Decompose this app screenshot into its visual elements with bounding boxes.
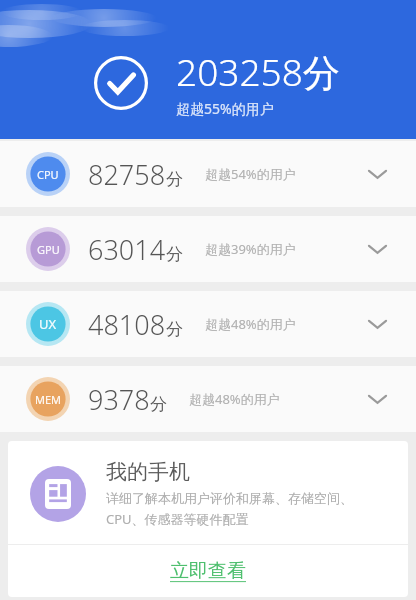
staticText: 超越39%的用户 [205, 240, 296, 258]
staticText: 超越48%的用户 [189, 390, 280, 408]
staticText: 立即查看 [170, 559, 246, 583]
button[interactable]: UX [0, 291, 416, 357]
other: Expand CPU [362, 159, 392, 189]
other: Expand MEM [362, 384, 392, 414]
staticText: MEM [35, 392, 62, 407]
staticText: 9378 [88, 381, 150, 418]
staticText: 分 [166, 319, 183, 340]
staticText: GPU [37, 242, 60, 257]
staticText: 203258分 [176, 46, 340, 97]
button[interactable]: MEM [0, 366, 416, 432]
button[interactable]: 立即查看 [8, 545, 408, 597]
staticText: 48108 [88, 306, 166, 343]
staticText: UX [39, 315, 57, 333]
button[interactable]: GPU [0, 216, 416, 282]
staticText: 超越55%的用户 [176, 99, 274, 118]
staticText: 分 [166, 244, 183, 265]
staticText: 超越54%的用户 [205, 165, 296, 183]
staticText: 我的手机 [106, 459, 190, 485]
staticText: 详细了解本机用户评价和屏幕、存储空间、 CPU、传感器等硬件配置 [106, 490, 353, 528]
button[interactable]: 我的手机 [8, 441, 408, 597]
staticText: 63014 [88, 231, 166, 268]
button[interactable]: CPU [0, 141, 416, 207]
staticText: 分 [150, 394, 167, 415]
staticText: 82758 [88, 156, 166, 193]
other: Expand UX [362, 309, 392, 339]
staticText: 超越48%的用户 [205, 315, 296, 333]
staticText: 分 [166, 169, 183, 190]
other: Expand GPU [362, 234, 392, 264]
staticText: CPU [37, 167, 59, 182]
